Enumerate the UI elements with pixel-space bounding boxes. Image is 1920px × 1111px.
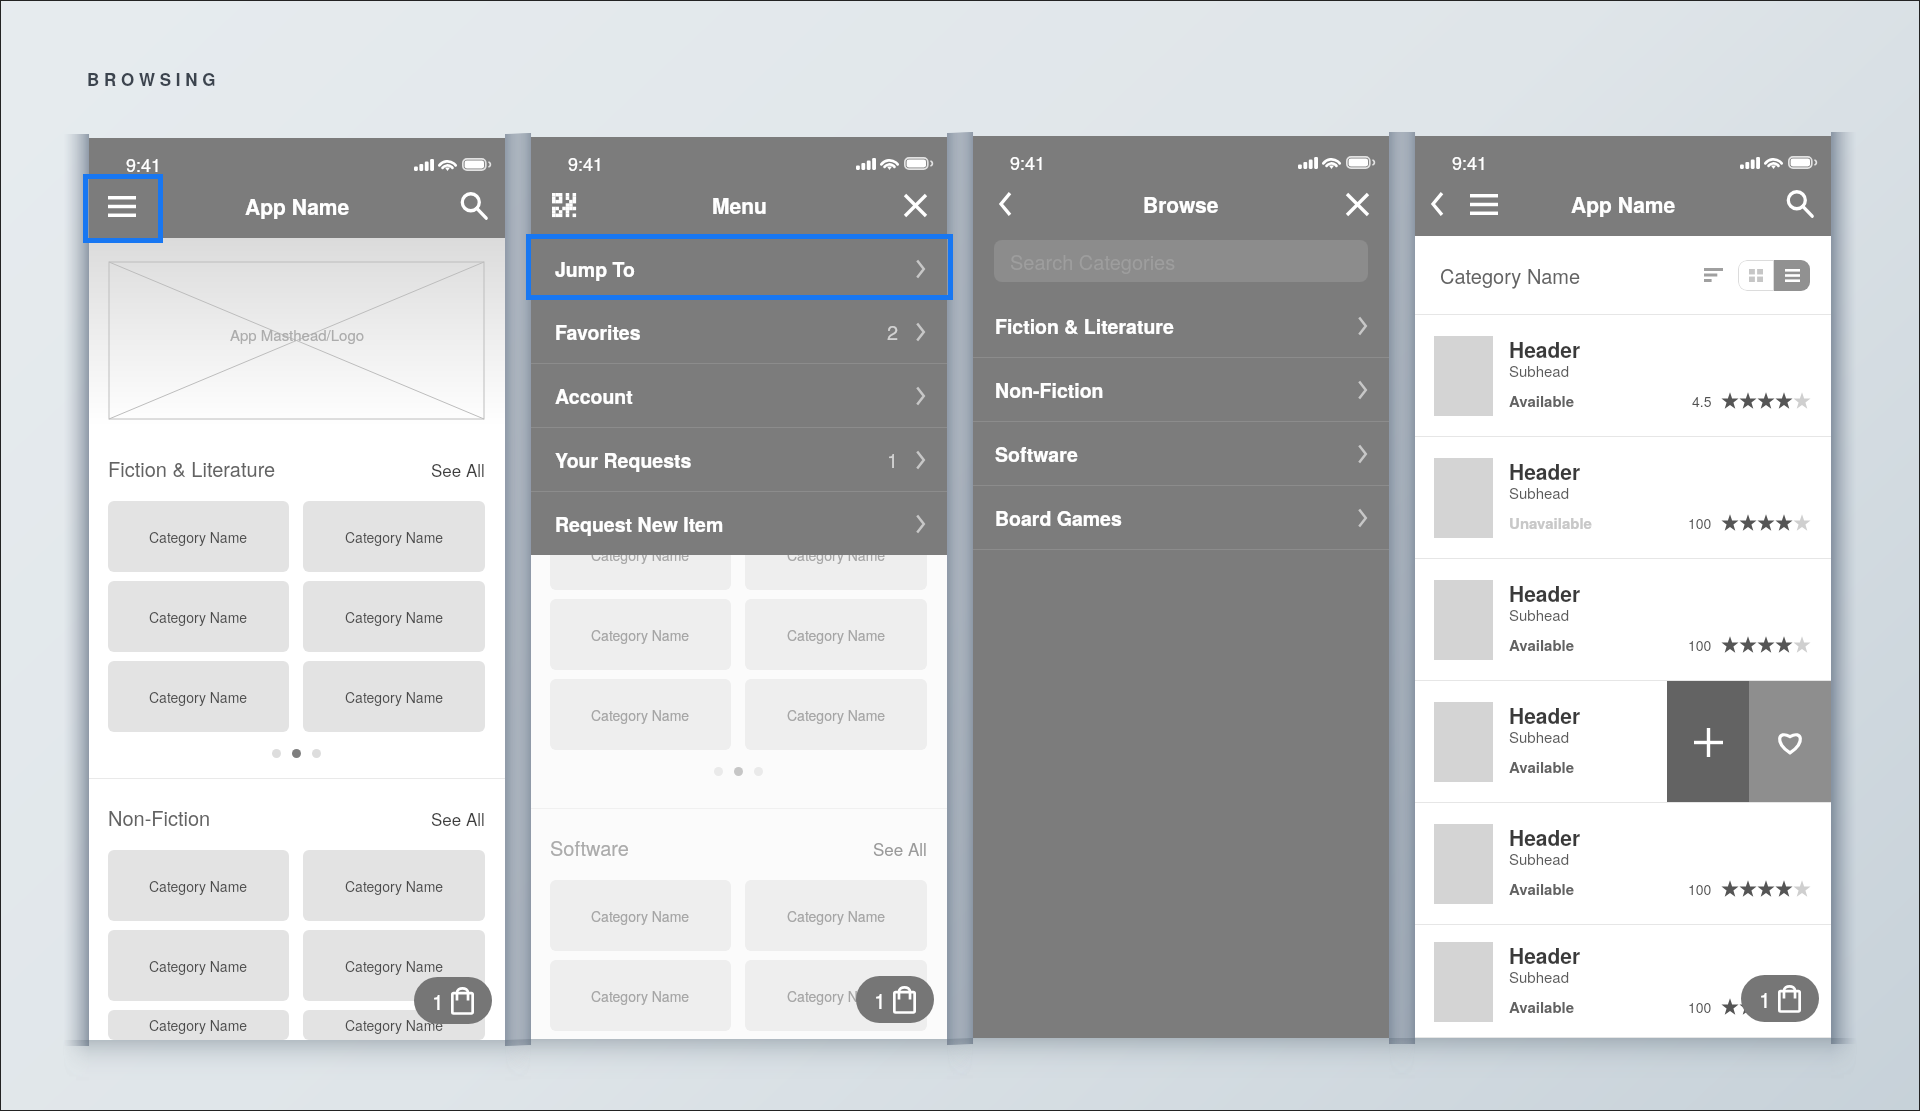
staticText: Available — [1509, 756, 1575, 777]
staticText: Header — [1509, 940, 1581, 970]
button[interactable]: Favorites — [531, 300, 947, 363]
staticText: Fiction & Literature — [108, 454, 276, 483]
staticText: App Name — [245, 191, 350, 221]
button[interactable]: Search Categories — [994, 240, 1368, 282]
button[interactable]: Category Name — [108, 930, 289, 1001]
staticText: Category Name — [591, 705, 690, 725]
staticText: Subhead — [1509, 604, 1570, 625]
staticText: Category Name — [149, 956, 248, 976]
staticText: 9:41 — [1452, 149, 1488, 175]
staticText: Subhead — [1509, 360, 1570, 381]
button[interactable]: Grid view — [1738, 260, 1774, 291]
button[interactable]: Close — [883, 179, 947, 237]
button[interactable]: Category Name — [303, 930, 485, 1001]
button[interactable]: Account — [531, 364, 947, 427]
button[interactable]: Category Name — [108, 850, 289, 921]
button[interactable]: Non-Fiction — [973, 358, 1389, 421]
button[interactable]: Category Name — [303, 501, 485, 572]
button[interactable]: List view — [1774, 260, 1810, 291]
button[interactable]: Search — [441, 180, 505, 238]
staticText: Category Name — [787, 906, 886, 926]
button[interactable]: Category Name — [108, 1010, 289, 1040]
staticText: Fiction & Literature — [995, 312, 1174, 340]
button[interactable]: Menu — [89, 180, 155, 238]
button[interactable]: Close — [1325, 178, 1389, 236]
staticText: 9:41 — [126, 151, 162, 177]
staticText: Browse — [1143, 189, 1219, 219]
button[interactable]: Header — [1415, 803, 1831, 925]
button[interactable]: Header — [1415, 681, 1831, 803]
button[interactable]: See All — [431, 806, 485, 832]
staticText: See All — [431, 806, 485, 830]
staticText: Category Name — [345, 527, 444, 547]
staticText: 9:41 — [568, 150, 604, 176]
button[interactable]: Header — [1415, 559, 1831, 681]
staticText: Menu — [712, 190, 767, 220]
staticText: App Masthead/Logo — [230, 324, 365, 345]
staticText: See All — [431, 457, 485, 481]
staticText: Non-Fiction — [995, 376, 1104, 404]
staticText: Your Requests — [555, 446, 692, 474]
button[interactable]: 1 — [414, 977, 492, 1024]
staticText: 1 — [887, 445, 899, 474]
button[interactable]: Search — [1767, 178, 1831, 236]
button[interactable]: Your Requests — [531, 428, 947, 491]
staticText: 100 — [1688, 879, 1712, 899]
button[interactable]: 1 — [1741, 975, 1819, 1022]
button[interactable]: Category Name — [108, 581, 289, 652]
button[interactable]: Category Name — [303, 1010, 485, 1040]
button[interactable]: Jump To — [531, 237, 947, 300]
staticText: Category Name — [591, 545, 690, 565]
staticText: 100 — [1688, 635, 1712, 655]
button[interactable]: Add — [1667, 681, 1749, 803]
staticText: Header — [1509, 700, 1581, 730]
staticText: Category Name — [345, 876, 444, 896]
staticText: Subhead — [1509, 966, 1570, 987]
staticText: Category Name — [591, 986, 690, 1006]
button[interactable]: Board Games — [973, 486, 1389, 549]
staticText: Software — [550, 833, 629, 862]
staticText: Category Name — [149, 687, 248, 707]
button[interactable]: Menu — [1459, 178, 1509, 236]
button[interactable]: Back — [1415, 178, 1459, 236]
staticText: Category Name — [345, 607, 444, 627]
button[interactable]: Scan code — [531, 179, 597, 237]
staticText: Header — [1509, 334, 1581, 364]
button[interactable]: Category Name — [303, 661, 485, 732]
button[interactable]: Software — [973, 422, 1389, 485]
staticText: Category Name — [787, 625, 886, 645]
staticText: Available — [1509, 390, 1575, 411]
button[interactable]: Favorite — [1749, 681, 1831, 803]
staticText: Search Categories — [1010, 247, 1176, 276]
staticText: B R O W S I N G — [87, 67, 216, 91]
button[interactable]: Category Name — [108, 661, 289, 732]
button[interactable]: Header — [1415, 315, 1831, 437]
staticText: Account — [555, 382, 633, 410]
button[interactable]: Fiction & Literature — [973, 294, 1389, 357]
button[interactable]: Category Name — [303, 581, 485, 652]
button[interactable]: See All — [431, 457, 485, 483]
button[interactable]: Category Name — [303, 850, 485, 921]
staticText: Category Name — [591, 625, 690, 645]
button[interactable]: 1 — [856, 976, 934, 1023]
staticText: Subhead — [1509, 726, 1570, 747]
staticText: Category Name — [149, 1015, 248, 1035]
staticText: Category Name — [149, 607, 248, 627]
staticText: Category Name — [787, 705, 886, 725]
staticText: Category Name — [1440, 261, 1581, 290]
staticText: Board Games — [995, 504, 1122, 532]
staticText: 1 — [874, 985, 886, 1015]
staticText: 2 — [887, 317, 899, 346]
staticText: Category Name — [345, 956, 444, 976]
button[interactable]: Header — [1415, 925, 1831, 1038]
button[interactable]: Sort — [1704, 268, 1723, 282]
staticText: Header — [1509, 578, 1581, 608]
staticText: App Name — [1571, 189, 1676, 219]
staticText: Subhead — [1509, 848, 1570, 869]
button[interactable]: Request New Item — [531, 492, 947, 555]
button[interactable]: Category Name — [108, 501, 289, 572]
button[interactable]: Header — [1415, 437, 1831, 559]
staticText: 100 — [1688, 997, 1712, 1017]
staticText: Request New Item — [555, 510, 724, 538]
button[interactable]: Back — [973, 178, 1037, 236]
